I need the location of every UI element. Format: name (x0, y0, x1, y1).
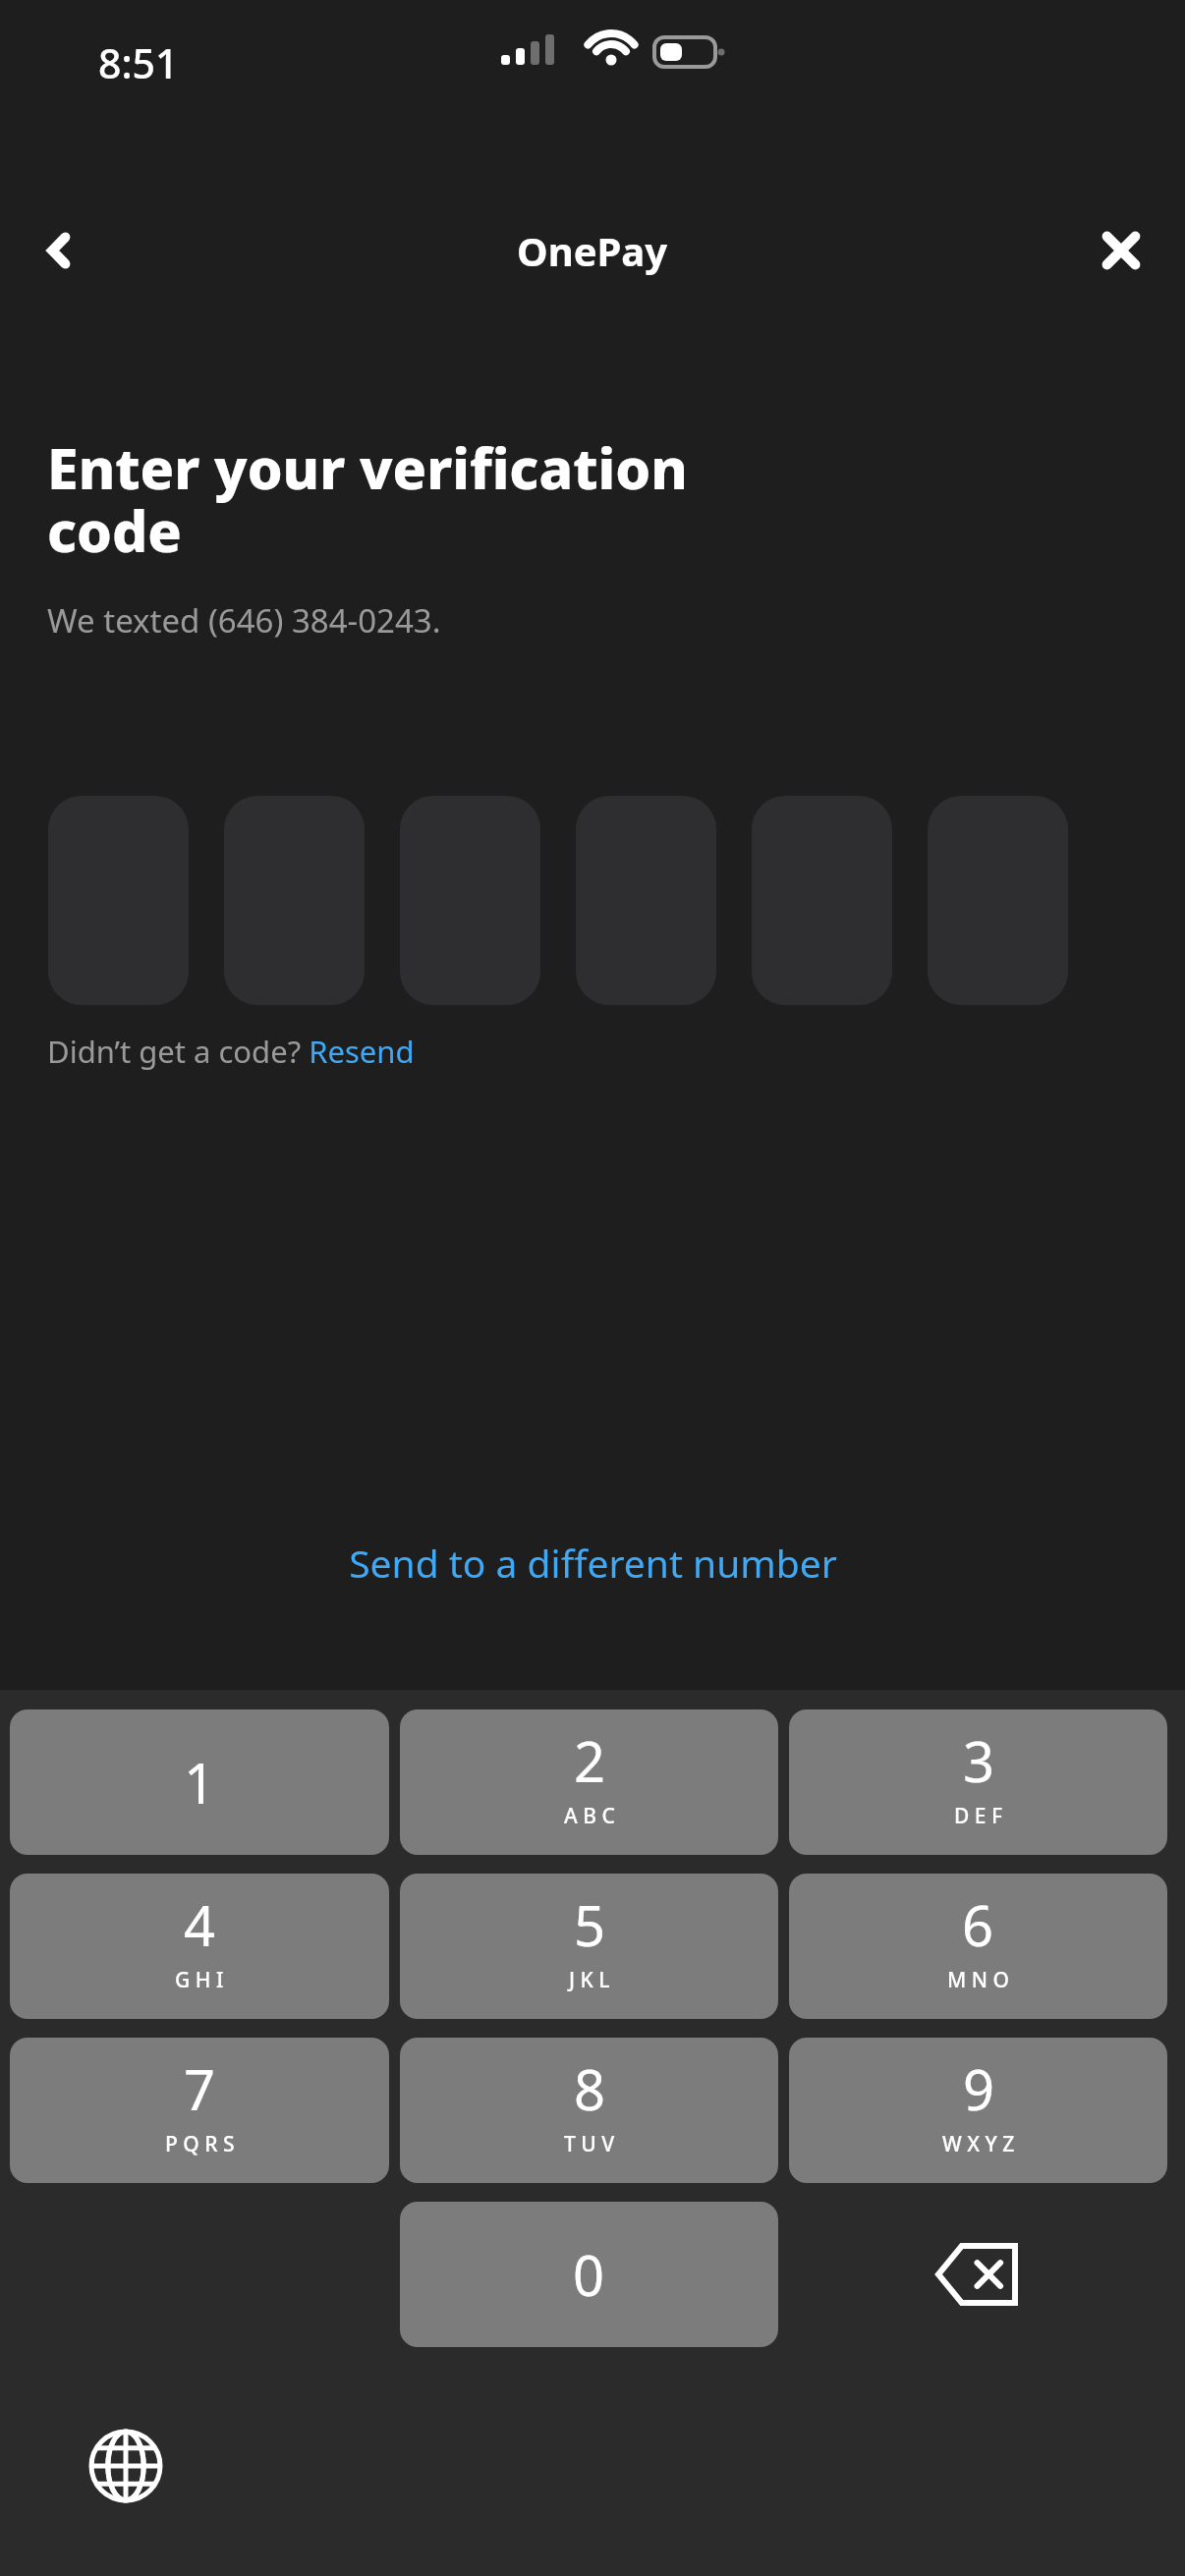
staticText: 2 (574, 1723, 606, 1798)
button[interactable] (48, 796, 189, 1005)
staticText: 7 (184, 2051, 216, 2126)
staticText: T U V (564, 2130, 615, 2158)
staticText: 8:51 (98, 35, 179, 90)
button[interactable]: 5 (400, 1874, 778, 2019)
staticText: G H I (175, 1966, 224, 1994)
button[interactable] (224, 796, 365, 1005)
button[interactable] (400, 796, 540, 1005)
button[interactable]: 9 (789, 2038, 1167, 2183)
button[interactable] (576, 796, 716, 1005)
button[interactable]: 4 (10, 1874, 389, 2019)
staticText: W X Y Z (942, 2130, 1015, 2158)
staticText: 5 (574, 1887, 606, 1962)
staticText: 8 (574, 2051, 606, 2126)
button[interactable] (752, 796, 892, 1005)
staticText: P Q R S (165, 2130, 235, 2158)
staticText: D E F (954, 1802, 1003, 1830)
staticText: We texted (646) 384-0243. (47, 598, 441, 643)
button[interactable]: 6 (789, 1874, 1167, 2019)
staticText: 9 (963, 2051, 995, 2126)
button[interactable]: 1 (10, 1709, 389, 1855)
staticText: OnePay (517, 224, 668, 277)
button[interactable]: Send to a different number (341, 1531, 845, 1595)
button[interactable] (928, 796, 1068, 1005)
staticText: 4 (184, 1887, 216, 1962)
button[interactable]: 7 (10, 2038, 389, 2183)
staticText: 1 (184, 1745, 216, 1820)
button[interactable]: Didn’t get a code? Resend (47, 1031, 415, 1072)
button[interactable]: 8 (400, 2038, 778, 2183)
button[interactable]: 2 (400, 1709, 778, 1855)
staticText: J K L (569, 1966, 610, 1994)
button[interactable]: 3 (789, 1709, 1167, 1855)
staticText: Enter your verification code (47, 429, 688, 569)
staticText: M N O (947, 1966, 1009, 1994)
staticText: 0 (573, 2237, 605, 2312)
staticText: A B C (564, 1802, 615, 1830)
staticText: 3 (963, 1723, 995, 1798)
button[interactable]: Close (1079, 196, 1163, 305)
staticText: 6 (962, 1887, 994, 1962)
button[interactable]: 0 (400, 2202, 778, 2347)
button[interactable]: Backspace (789, 2202, 1167, 2347)
button[interactable]: Back (22, 196, 96, 305)
button[interactable]: Change keyboard language (77, 2417, 175, 2515)
